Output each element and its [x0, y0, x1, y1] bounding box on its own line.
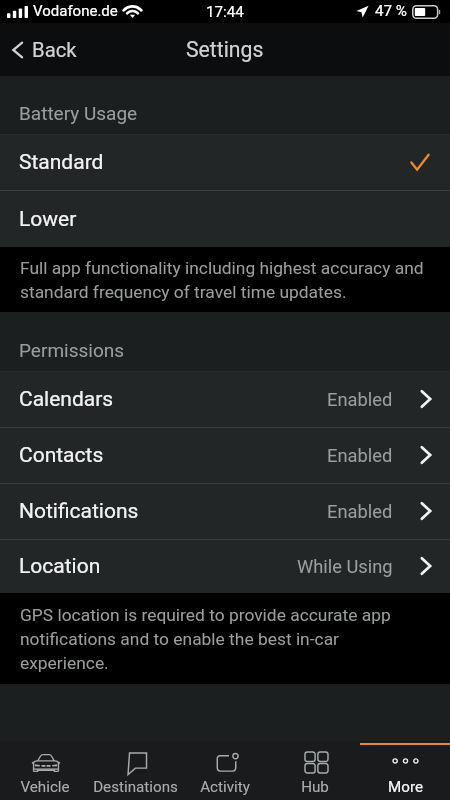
staticText: More	[388, 778, 423, 796]
button[interactable]: Calendars	[0, 372, 450, 427]
button[interactable]: Notifications	[0, 484, 450, 539]
staticText: Lower	[19, 207, 77, 232]
staticText: While Using	[297, 556, 393, 577]
button[interactable]: More	[360, 745, 450, 800]
staticText: Enabled	[327, 501, 393, 522]
button[interactable]: Destinations	[90, 745, 180, 800]
staticText: 47 %	[375, 2, 407, 20]
staticText: Hub	[301, 778, 329, 796]
button[interactable]: Vehicle	[0, 745, 90, 800]
staticText: Activity	[200, 778, 250, 796]
staticText: Full app functionality including highest…	[20, 258, 430, 302]
button[interactable]: Lower	[0, 191, 450, 247]
staticText: Standard	[19, 150, 104, 175]
button[interactable]: Activity	[180, 745, 270, 800]
staticText: GPS location is required to provide accu…	[20, 605, 430, 673]
button[interactable]: Back	[0, 23, 91, 76]
button[interactable]: Standard	[0, 135, 450, 190]
staticText: Vodafone.de	[33, 2, 118, 20]
staticText: Contacts	[19, 443, 104, 468]
staticText: Back	[32, 38, 77, 62]
staticText: 17:44	[206, 3, 244, 21]
staticText: Enabled	[327, 389, 393, 410]
staticText: Destinations	[93, 778, 178, 796]
staticText: Vehicle	[20, 778, 70, 796]
staticText: Permissions	[19, 339, 125, 361]
button[interactable]: Contacts	[0, 428, 450, 483]
staticText: Enabled	[327, 445, 393, 466]
button[interactable]: Location	[0, 540, 450, 593]
button[interactable]: Hub	[270, 745, 360, 800]
staticText: Settings	[186, 37, 264, 62]
staticText: Location	[19, 554, 101, 579]
staticText: Notifications	[19, 499, 139, 524]
staticText: Battery Usage	[19, 102, 138, 124]
staticText: Calendars	[19, 387, 114, 412]
